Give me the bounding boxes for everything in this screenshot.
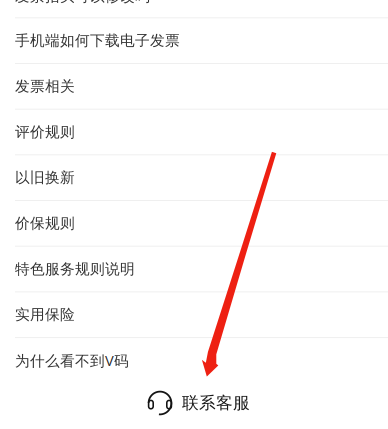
- staticText: 发票相关: [15, 77, 75, 96]
- button[interactable]: 手机端如何下载电子发票: [0, 18, 388, 63]
- button[interactable]: 价保规则: [0, 201, 388, 246]
- button[interactable]: 发票抬头可以修改吗: [0, 0, 388, 17]
- button[interactable]: 联系客服: [0, 383, 388, 429]
- button[interactable]: 以旧换新: [0, 155, 388, 200]
- staticText: 联系客服: [182, 392, 250, 413]
- staticText: 手机端如何下载电子发票: [15, 31, 180, 50]
- staticText: 发票抬头可以修改吗: [15, 0, 150, 6]
- button[interactable]: 为什么看不到V码: [0, 338, 388, 383]
- button[interactable]: 实用保险: [0, 292, 388, 337]
- staticText: 评价规则: [15, 123, 75, 141]
- button[interactable]: 特色服务规则说明: [0, 247, 388, 291]
- staticText: 实用保险: [15, 305, 75, 324]
- staticText: 价保规则: [15, 214, 75, 233]
- button[interactable]: 评价规则: [0, 110, 388, 154]
- button[interactable]: 发票相关: [0, 64, 388, 109]
- staticText: 以旧换新: [15, 168, 75, 187]
- staticText: 特色服务规则说明: [15, 260, 135, 278]
- staticText: 为什么看不到V码: [15, 350, 129, 370]
